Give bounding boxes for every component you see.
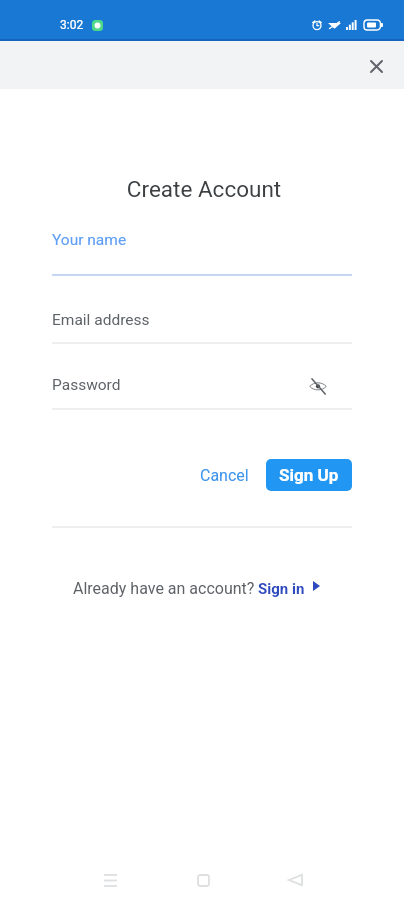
button[interactable]: Sign Up [266,459,352,491]
staticText: Email address [52,311,150,329]
button[interactable]: Close [360,50,392,82]
button[interactable]: Cancel [192,459,257,491]
staticText: Sign in [258,580,305,598]
staticText: Already have an account? [73,579,255,598]
staticText: 3:02 [60,18,84,32]
staticText: Sign Up [279,465,339,485]
staticText: Cancel [200,466,249,485]
button[interactable]: Sign in [258,580,320,598]
button[interactable]: Show password [309,377,327,395]
button[interactable]: Recent apps [90,860,130,900]
staticText: Your name [52,231,127,249]
button[interactable]: Back [275,860,315,900]
staticText: Create Account [2,176,404,202]
button[interactable]: Home [183,860,223,900]
staticText: Password [52,376,121,394]
